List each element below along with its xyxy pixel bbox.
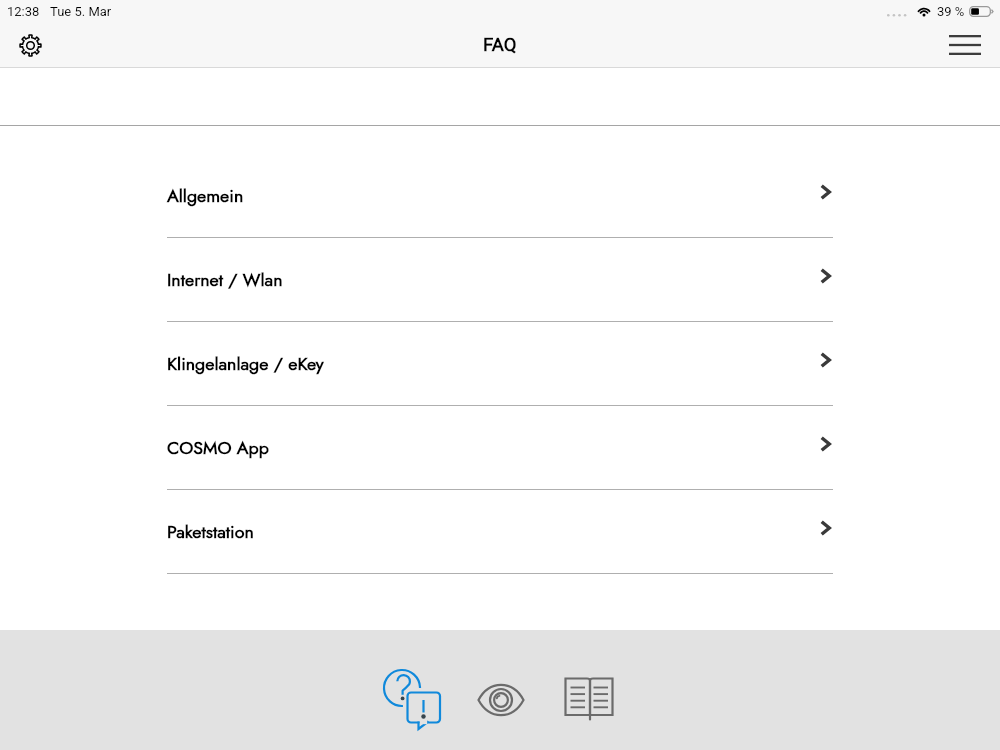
staticText: 12:38 — [7, 4, 40, 19]
staticText: Klingelanlage / eKey — [167, 351, 324, 377]
button[interactable]: Paketstation — [0, 490, 1000, 574]
staticText: 39 % — [937, 4, 965, 19]
button[interactable]: Settings — [12, 27, 48, 63]
staticText: COSMO App — [167, 435, 269, 461]
staticText: Paketstation — [167, 519, 254, 545]
button[interactable]: Allgemein — [0, 154, 1000, 238]
button[interactable]: Klingelanlage / eKey — [0, 322, 1000, 406]
staticText: FAQ — [483, 34, 517, 56]
button[interactable]: Internet / Wlan — [0, 238, 1000, 322]
staticText: Internet / Wlan — [167, 267, 283, 293]
staticText: Tue 5. Mar — [50, 4, 112, 19]
button[interactable]: Overview — [465, 664, 537, 736]
staticText: Allgemein — [167, 183, 244, 209]
button[interactable]: Menu — [944, 24, 986, 66]
button[interactable]: Manual — [554, 663, 626, 735]
button[interactable]: FAQ — [375, 661, 447, 733]
button[interactable]: COSMO App — [0, 406, 1000, 490]
